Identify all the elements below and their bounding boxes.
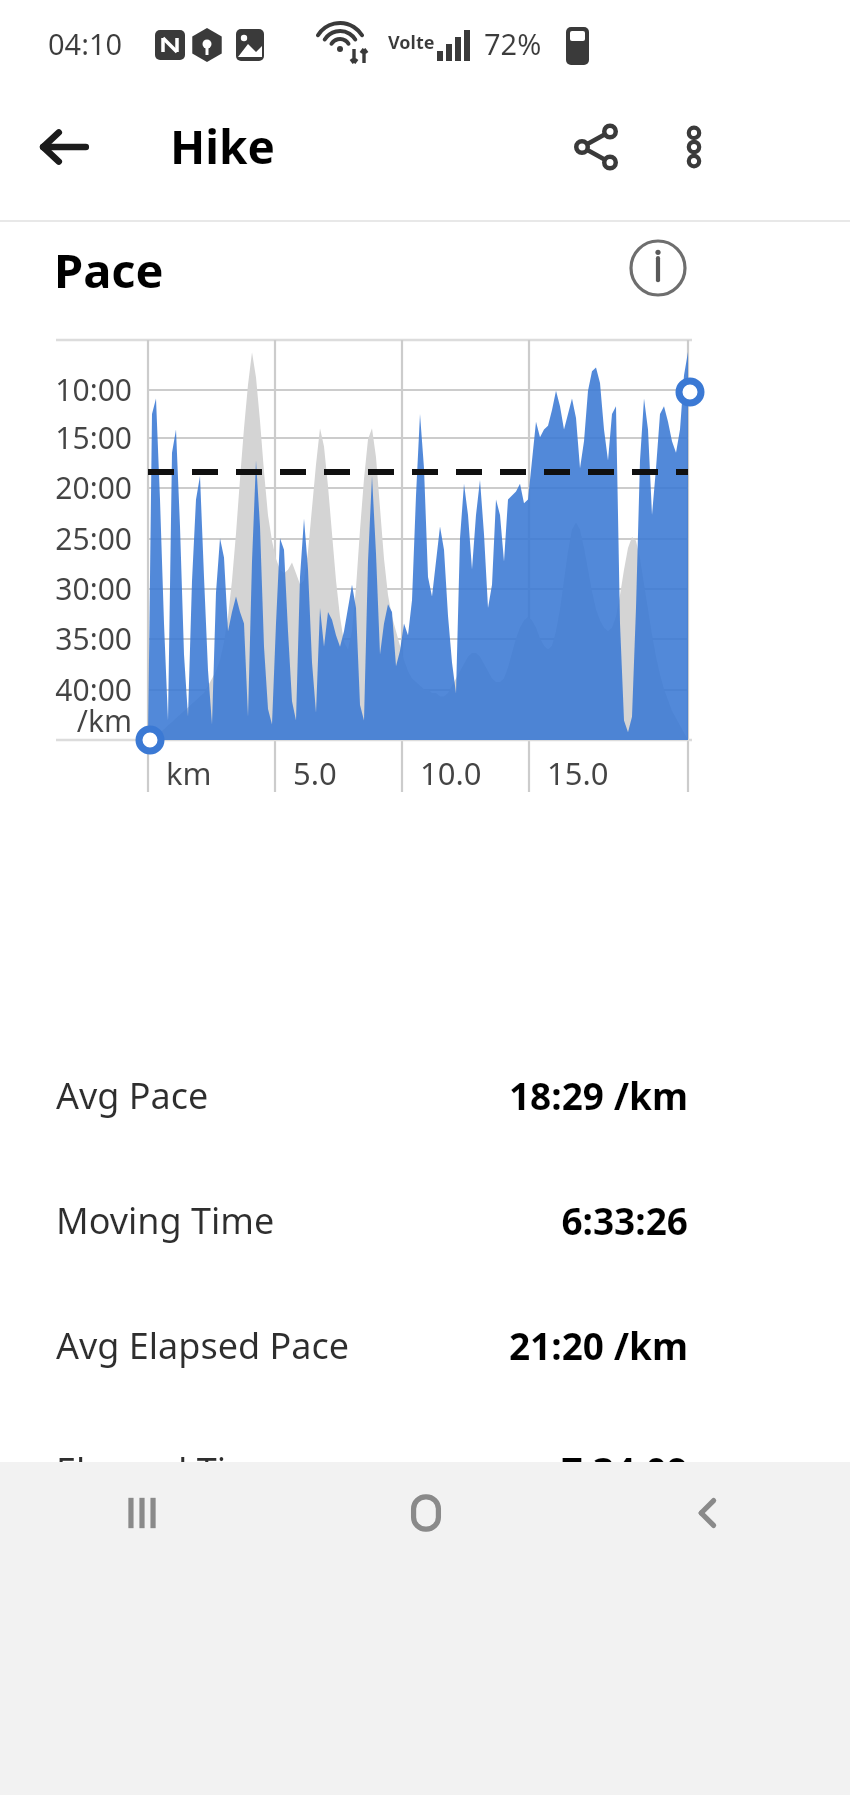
button[interactable]: Back [567, 1462, 850, 1564]
staticText: 30:00 [0, 568, 132, 609]
staticText: Pace [54, 238, 164, 302]
staticText: 21:20 /km [358, 1320, 688, 1370]
staticText: 35:00 [0, 618, 132, 659]
staticText: /km [0, 700, 132, 741]
staticText: 15:00 [0, 417, 132, 458]
staticText: 10:00 [0, 369, 132, 410]
staticText: Volte [388, 30, 435, 55]
button[interactable]: Elapsed Time [0, 1407, 850, 1532]
staticText: 6:33:26 [283, 1195, 688, 1245]
button[interactable]: Moving Time [0, 1157, 850, 1282]
staticText: 10.0 [420, 752, 482, 794]
staticText: 72% [484, 24, 542, 63]
staticText: 04:10 [48, 24, 123, 63]
staticText: km [166, 752, 212, 794]
staticText: 25:00 [0, 518, 132, 559]
staticText: Avg Elapsed Pace [56, 1321, 350, 1370]
staticText: 20:00 [0, 467, 132, 508]
button[interactable]: Share [553, 105, 637, 189]
staticText: Avg Pace [56, 1071, 209, 1120]
staticText: Moving Time [56, 1196, 275, 1245]
staticText: 7:34:09 [288, 1445, 688, 1495]
button[interactable]: Back [22, 105, 106, 189]
button[interactable]: Recent apps [0, 1462, 284, 1564]
button[interactable]: Avg Pace [0, 1032, 850, 1157]
staticText: Elapsed Time [56, 1446, 280, 1495]
button[interactable]: Avg Elapsed Pace [0, 1282, 850, 1407]
button[interactable]: Home [284, 1462, 567, 1564]
button[interactable]: More options [652, 105, 736, 189]
staticText: 5.0 [293, 752, 337, 794]
staticText: 15.0 [547, 752, 609, 794]
staticText: Hike [170, 115, 275, 178]
staticText: 40:00 [0, 669, 132, 710]
button[interactable]: Information about Pace [618, 228, 698, 308]
staticText: 18:29 /km [217, 1070, 688, 1120]
